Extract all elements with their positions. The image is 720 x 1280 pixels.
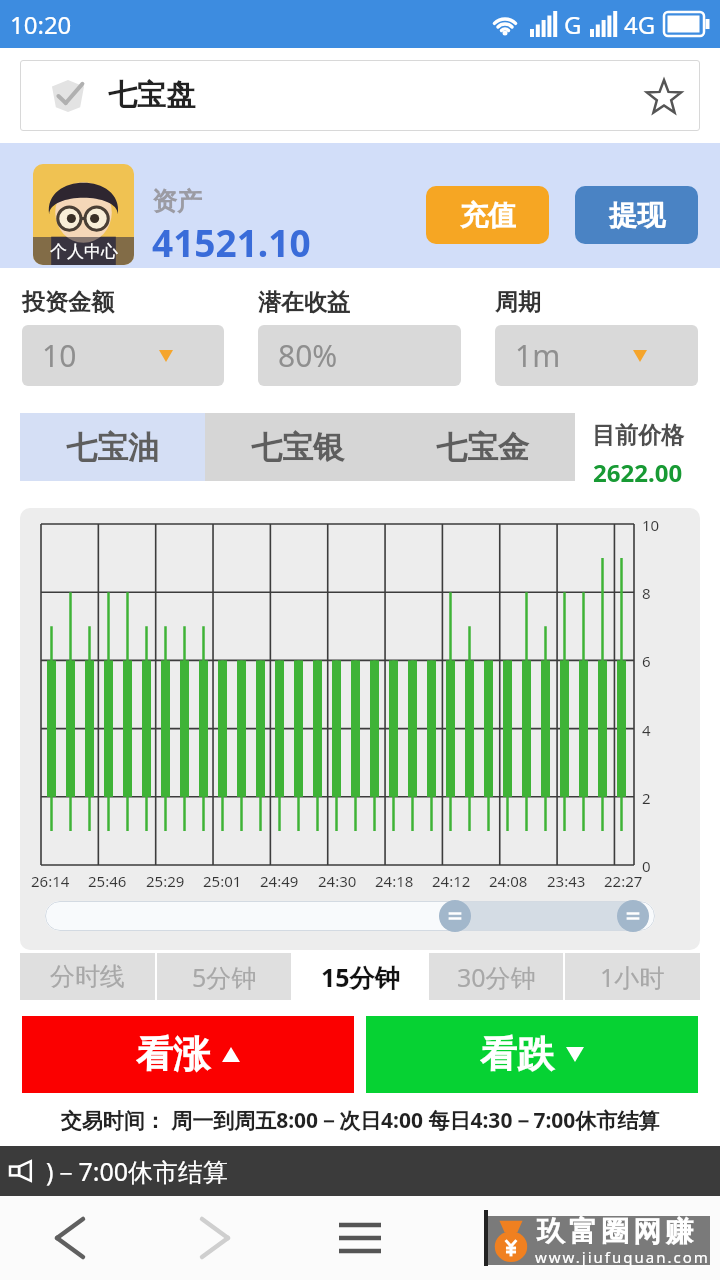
staticText: 提现 [609, 198, 665, 233]
staticText: 资产 [152, 186, 202, 217]
staticText: 24:18 [375, 871, 414, 891]
staticText: 6 [642, 651, 651, 671]
button[interactable]: 1小时 [565, 953, 700, 1000]
button[interactable]: 充值 [426, 186, 549, 244]
staticText: 23:43 [547, 871, 586, 891]
button[interactable]: 5分钟 [157, 953, 291, 1000]
button[interactable]: 10 [22, 325, 224, 386]
button[interactable]: 七宝银 [205, 413, 390, 481]
staticText: 2622.00 [593, 456, 683, 489]
staticText: 0 [642, 856, 651, 876]
staticText: 4 [642, 720, 651, 740]
staticText: 七宝金 [436, 428, 529, 467]
staticText: 投资金额 [22, 288, 114, 317]
staticText: 1小时 [600, 960, 665, 994]
staticText: 交易时间： 周一到周五8:00－次日4:00 每日4:30－7:00休市结算 [0, 1106, 720, 1135]
staticText: 潜在收益 [258, 288, 350, 317]
staticText: 24:49 [260, 871, 299, 891]
staticText: 目前价格 [592, 421, 684, 450]
staticText: 10:20 [10, 8, 72, 41]
button[interactable]: 看跌 [366, 1016, 698, 1093]
staticText: )－7:00休市结算 [46, 1154, 229, 1188]
staticText: 5分钟 [192, 960, 257, 994]
button[interactable] [617, 900, 649, 932]
button[interactable]: 30分钟 [429, 953, 563, 1000]
staticText: G [564, 8, 582, 41]
staticText: 玖富圈网赚 [535, 1214, 695, 1249]
button[interactable]: 七宝盘 [20, 60, 700, 131]
button[interactable] [183, 1196, 247, 1280]
staticText: 24:30 [318, 871, 357, 891]
button[interactable]: 个人中心 [33, 164, 134, 265]
staticText: 25:01 [203, 871, 242, 891]
button[interactable]: 提现 [575, 186, 698, 244]
staticText: 4G [624, 8, 656, 41]
button[interactable]: 七宝油 [20, 413, 205, 481]
staticText: 8 [642, 583, 651, 603]
staticText: 25:29 [146, 871, 185, 891]
staticText: 24:08 [489, 871, 528, 891]
staticText: 10 [42, 335, 77, 376]
staticText: 七宝银 [251, 428, 344, 467]
staticText: 看跌 [480, 1031, 554, 1078]
staticText: 25:46 [88, 871, 127, 891]
button[interactable] [328, 1196, 392, 1280]
button[interactable] [38, 1196, 102, 1280]
staticText: 10 [642, 515, 660, 535]
staticText: 30分钟 [457, 960, 536, 994]
staticText: 个人中心 [50, 241, 118, 262]
staticText: 七宝油 [66, 428, 159, 467]
staticText: 七宝盘 [108, 77, 195, 114]
staticText: 26:14 [31, 871, 70, 891]
staticText: 充值 [460, 198, 516, 233]
staticText: 24:12 [432, 871, 471, 891]
staticText: 41521.10 [152, 217, 311, 267]
button[interactable]: 看涨 [22, 1016, 354, 1093]
staticText: 分时线 [50, 961, 125, 992]
staticText: 80% [278, 335, 338, 376]
staticText: 1m [515, 335, 561, 376]
staticText: 2 [642, 788, 651, 808]
button[interactable]: 15分钟 [293, 953, 427, 1000]
staticText: 看涨 [136, 1031, 210, 1078]
staticText: 22:27 [604, 871, 643, 891]
staticText: www.jiufuquan.com [535, 1247, 710, 1267]
button[interactable] [439, 900, 471, 932]
staticText: 15分钟 [321, 960, 400, 994]
button[interactable]: 分时线 [20, 953, 155, 1000]
button[interactable]: 七宝金 [390, 413, 575, 481]
button[interactable]: 1m [495, 325, 698, 386]
staticText: 周期 [495, 288, 541, 317]
button[interactable]: 80% [258, 325, 461, 386]
